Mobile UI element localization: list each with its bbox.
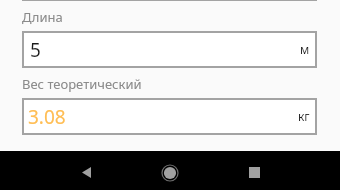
staticText: м <box>300 41 310 57</box>
staticText: 3.08 <box>28 104 66 130</box>
button[interactable]: Recent apps <box>237 155 271 189</box>
staticText: кг <box>298 108 310 124</box>
staticText: Вес теоретический <box>22 75 142 93</box>
staticText: Длина <box>22 8 63 26</box>
button[interactable]: 5 <box>22 31 317 68</box>
staticText: 5 <box>30 37 41 63</box>
button[interactable]: Home <box>153 156 187 190</box>
button[interactable]: 3.08 <box>22 98 317 135</box>
button[interactable]: Back <box>69 155 103 189</box>
